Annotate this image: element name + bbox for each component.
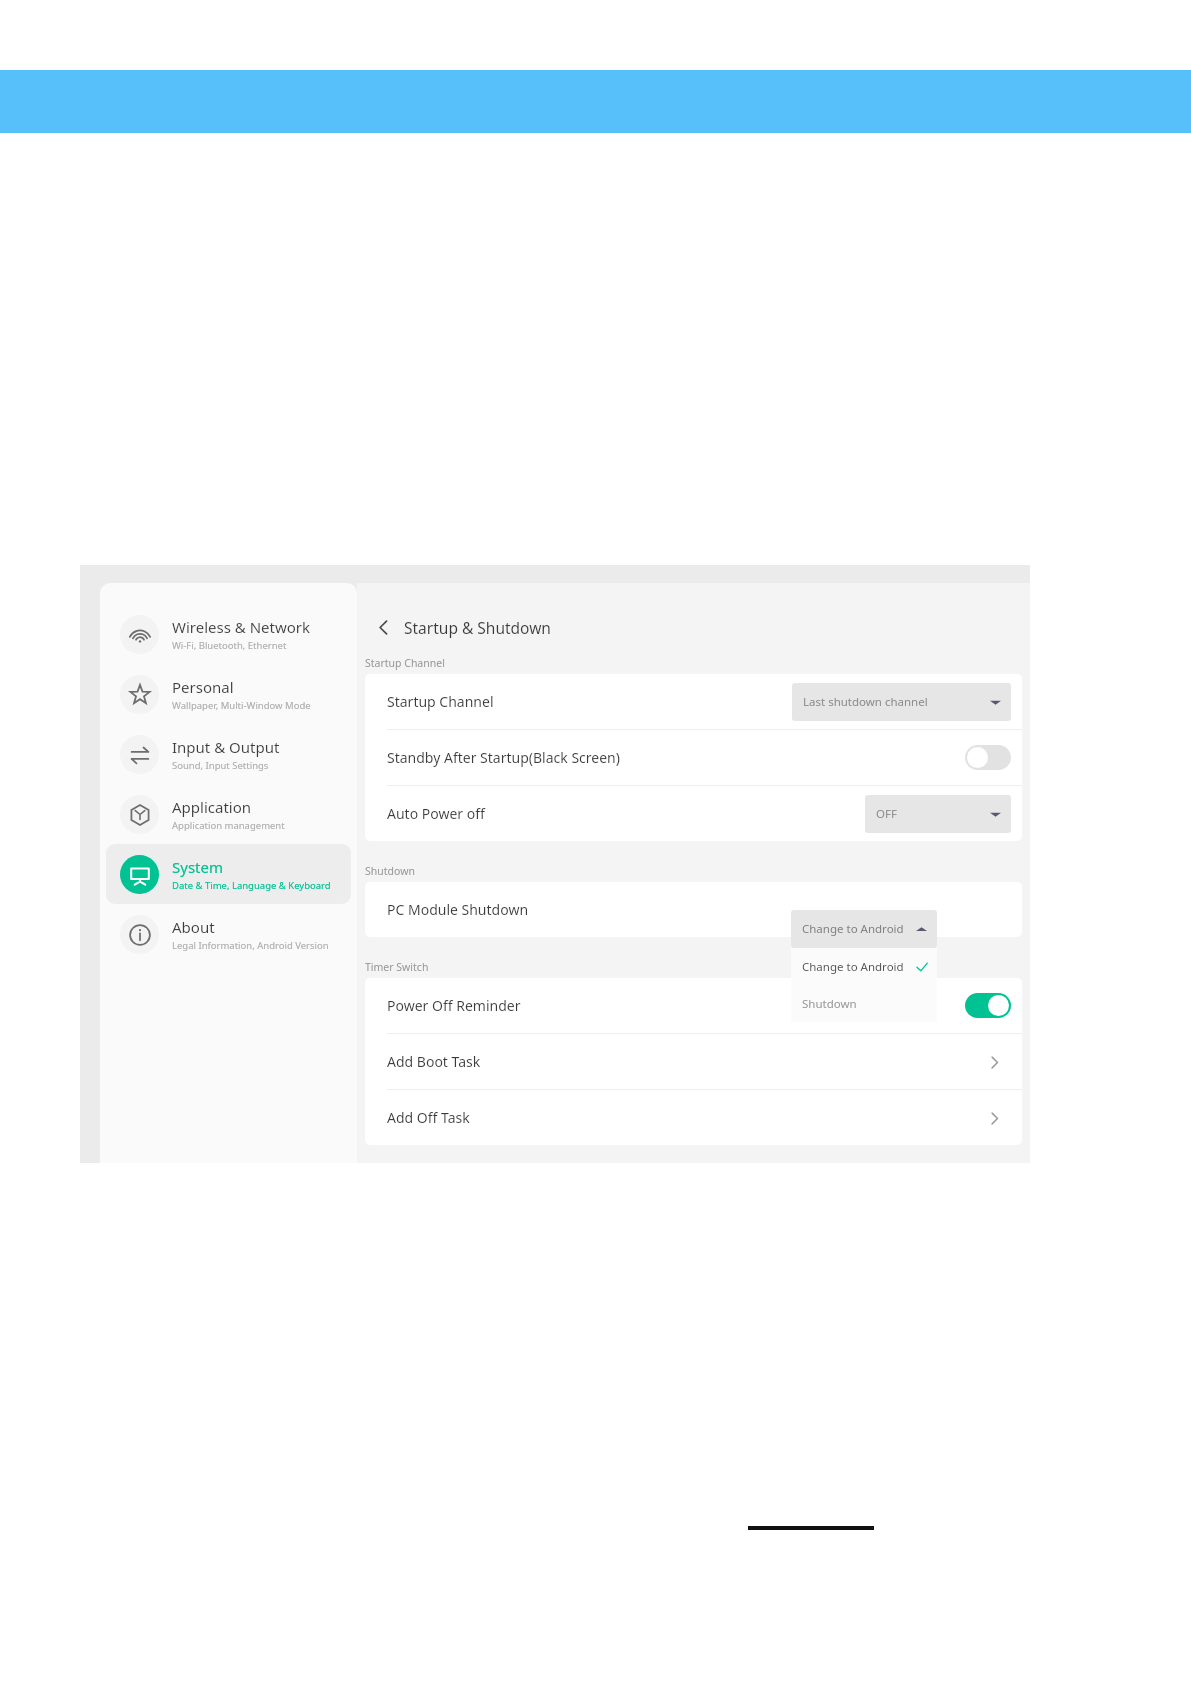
staticText: Date & Time, Language & Keyboard bbox=[172, 879, 331, 892]
staticText: Shutdown bbox=[365, 864, 415, 878]
staticText: Timer Switch bbox=[365, 960, 429, 974]
button[interactable]: Auto Power off bbox=[365, 786, 1022, 841]
button[interactable]: Change to Android bbox=[791, 910, 937, 948]
staticText: Personal bbox=[172, 677, 234, 697]
staticText: Application bbox=[172, 797, 252, 817]
button[interactable]: Change to Android bbox=[791, 948, 937, 985]
staticText: Standby After Startup(Black Screen) bbox=[387, 748, 620, 767]
staticText: Shutdown bbox=[802, 996, 857, 1012]
staticText: System bbox=[172, 857, 223, 877]
button[interactable]: Open bbox=[977, 1101, 1011, 1135]
button[interactable]: Back bbox=[375, 610, 551, 644]
staticText: Startup Channel bbox=[365, 656, 445, 670]
staticText: Change to Android bbox=[802, 959, 904, 975]
button[interactable]: Add Off Task bbox=[365, 1090, 1022, 1145]
button[interactable]: About bbox=[106, 904, 351, 964]
button[interactable]: Toggle off bbox=[965, 745, 1011, 770]
button[interactable]: Wireless & Network bbox=[106, 604, 351, 664]
button[interactable]: OFF bbox=[865, 795, 1011, 833]
button[interactable]: Startup Channel bbox=[365, 674, 1022, 729]
staticText: Wallpaper, Multi-Window Mode bbox=[172, 699, 311, 712]
button[interactable]: Add Boot Task bbox=[365, 1034, 1022, 1089]
staticText: Wi-Fi, Bluetooth, Ethernet bbox=[172, 639, 287, 652]
staticText: Change to Android bbox=[802, 921, 904, 937]
staticText: Power Off Reminder bbox=[387, 996, 521, 1015]
staticText: Sound, Input Settings bbox=[172, 759, 269, 772]
button[interactable]: System bbox=[106, 844, 351, 904]
button[interactable]: Shutdown bbox=[791, 985, 937, 1022]
button[interactable]: Last shutdown channel bbox=[792, 683, 1011, 721]
staticText: OFF bbox=[876, 806, 897, 822]
staticText: About bbox=[172, 917, 215, 937]
staticText: Application management bbox=[172, 819, 285, 832]
staticText: Last shutdown channel bbox=[803, 694, 928, 710]
button[interactable]: Standby After Startup(Black Screen) bbox=[365, 730, 1022, 785]
staticText: Auto Power off bbox=[387, 804, 485, 823]
staticText: PC Module Shutdown bbox=[387, 900, 529, 919]
staticText: Add Boot Task bbox=[387, 1052, 481, 1071]
staticText: Legal Information, Android Version bbox=[172, 939, 329, 952]
staticText: Startup Channel bbox=[387, 692, 494, 711]
button[interactable]: Application bbox=[106, 784, 351, 844]
button[interactable]: Power Off Reminder bbox=[365, 978, 1022, 1033]
button[interactable]: Toggle on bbox=[965, 993, 1011, 1018]
button[interactable]: Open bbox=[977, 1045, 1011, 1079]
staticText: Wireless & Network bbox=[172, 617, 311, 637]
staticText: Input & Output bbox=[172, 737, 280, 757]
button[interactable]: Personal bbox=[106, 664, 351, 724]
staticText: Add Off Task bbox=[387, 1108, 470, 1127]
staticText: Startup & Shutdown bbox=[404, 617, 551, 638]
button[interactable]: PC Module Shutdown bbox=[365, 882, 1022, 937]
button[interactable]: Input & Output bbox=[106, 724, 351, 784]
